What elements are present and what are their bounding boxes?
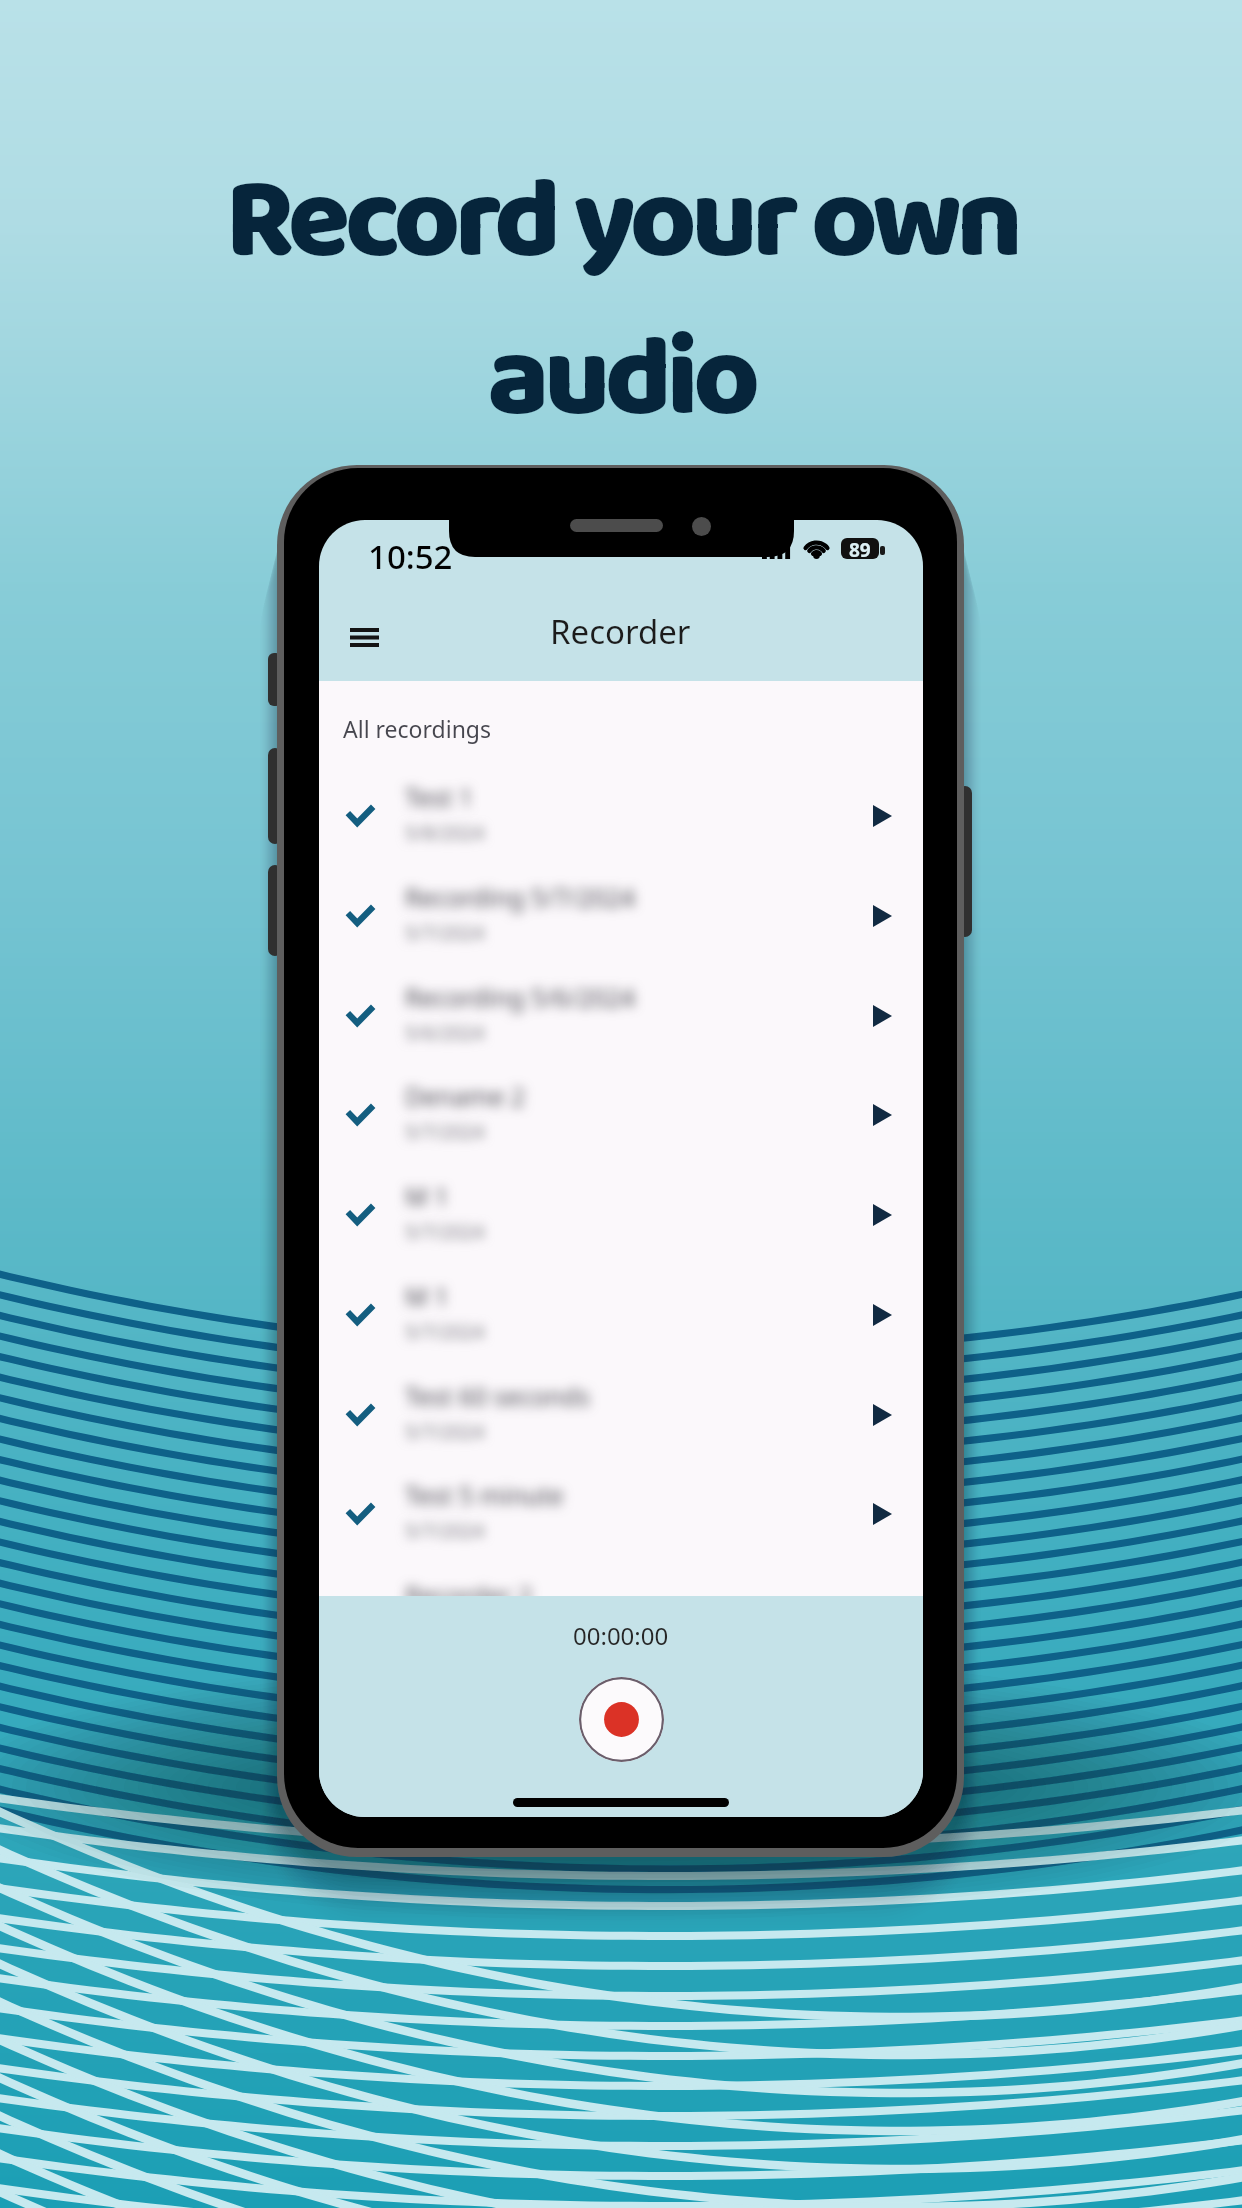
button[interactable]: Test 60 seconds (319, 1365, 923, 1465)
button[interactable]: Start recording (579, 1677, 664, 1762)
button[interactable]: Recording 5/6/2024 (319, 966, 923, 1066)
button[interactable]: Dename 2 (319, 1065, 923, 1165)
staticText: 00:00:00 (573, 1619, 669, 1652)
staticText: Recorder (550, 609, 691, 654)
staticText: 5/7/2024 (405, 1319, 485, 1345)
staticText: 5/7/2024 (405, 1518, 485, 1544)
button[interactable]: Recorder 2 (319, 1564, 923, 1596)
staticText: All recordings (343, 713, 492, 744)
staticText: Recorder 2 (405, 1578, 533, 1596)
staticText: 5/7/2024 (405, 1219, 485, 1245)
staticText: Test 5 minute (405, 1478, 564, 1512)
staticText: 5/7/2024 (405, 920, 485, 946)
staticText: 89 (849, 538, 871, 558)
staticText: Record your own (225, 131, 1018, 314)
staticText: Recording 5/6/2024 (405, 980, 636, 1014)
button[interactable]: Test 1 (319, 766, 923, 866)
staticText: 5/7/2024 (405, 1119, 485, 1145)
button[interactable]: M 1 (319, 1165, 923, 1265)
staticText: 5/6/2024 (405, 1020, 485, 1046)
staticText: audio (487, 289, 755, 472)
staticText: 10:52 (368, 534, 453, 579)
staticText: Dename 2 (405, 1079, 526, 1113)
button[interactable]: Recording 5/7/2024 (319, 866, 923, 966)
staticText: 5/8/2024 (405, 820, 485, 846)
button[interactable]: M 1 (319, 1265, 923, 1365)
button[interactable]: Open navigation menu (336, 609, 392, 665)
staticText: 5/7/2024 (405, 1419, 485, 1445)
button[interactable]: Test 5 minute (319, 1464, 923, 1564)
staticText: Test 1 (405, 780, 474, 814)
staticText: M 1 (405, 1279, 449, 1313)
staticText: Test 60 seconds (405, 1379, 590, 1413)
staticText: M 1 (405, 1179, 449, 1213)
staticText: Recording 5/7/2024 (405, 880, 636, 914)
